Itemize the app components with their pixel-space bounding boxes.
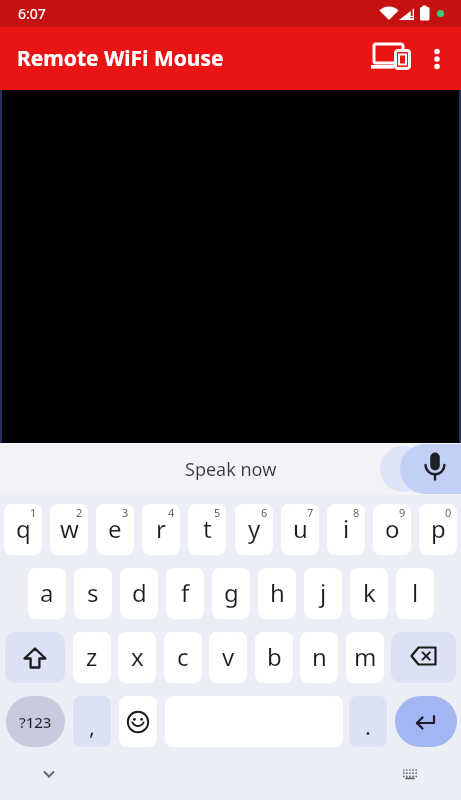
button[interactable]: p (419, 504, 457, 555)
button[interactable]: r (142, 504, 180, 555)
staticText: j (320, 576, 327, 609)
staticText: y (248, 512, 261, 545)
button[interactable]: i (327, 504, 365, 555)
staticText: 6 (261, 505, 268, 520)
staticText: t (203, 512, 212, 545)
staticText: e (108, 512, 122, 545)
staticText: v (222, 640, 235, 673)
staticText: x (131, 640, 144, 673)
staticText: Speak now (185, 457, 277, 482)
button[interactable] (0, 90, 461, 443)
button[interactable]: o (373, 504, 411, 555)
staticText: 5 (214, 505, 221, 520)
staticText: ?123 (19, 712, 52, 732)
staticText: 3 (122, 505, 129, 520)
staticText: n (312, 640, 327, 673)
button[interactable]: k (350, 568, 388, 619)
button[interactable] (391, 632, 456, 683)
staticText: 4 (168, 505, 175, 520)
button[interactable]: u (281, 504, 319, 555)
button[interactable]: f (166, 568, 204, 619)
staticText: 9 (399, 505, 406, 520)
staticText: i (343, 512, 350, 545)
staticText: u (293, 512, 308, 545)
staticText: o (385, 512, 400, 545)
staticText: 2 (76, 505, 83, 520)
staticText: , (89, 711, 95, 741)
button[interactable] (119, 696, 157, 747)
button[interactable]: w (50, 504, 88, 555)
staticText: a (40, 576, 54, 609)
staticText: 8 (353, 505, 360, 520)
staticText: p (431, 512, 446, 545)
button[interactable]: l (396, 568, 434, 619)
button[interactable]: s (74, 568, 112, 619)
staticText: c (177, 640, 189, 673)
button[interactable] (417, 39, 457, 79)
button[interactable]: y (235, 504, 273, 555)
button[interactable]: d (120, 568, 158, 619)
staticText: w (60, 512, 79, 545)
button[interactable]: a (28, 568, 66, 619)
button[interactable]: c (164, 632, 202, 683)
button[interactable] (395, 696, 457, 747)
button[interactable]: g (212, 568, 250, 619)
staticText: 7 (307, 505, 314, 520)
button[interactable]: z (73, 632, 111, 683)
button[interactable]: ?123 (6, 696, 65, 747)
staticText: g (224, 576, 239, 609)
button[interactable]: e (96, 504, 134, 555)
button[interactable]: b (255, 632, 293, 683)
staticText: k (363, 576, 376, 609)
staticText: z (86, 640, 98, 673)
button[interactable]: n (300, 632, 338, 683)
button[interactable] (367, 34, 417, 84)
staticText: f (181, 576, 190, 609)
button[interactable]: h (258, 568, 296, 619)
staticText: 0 (445, 505, 452, 520)
button[interactable] (34, 759, 64, 789)
button[interactable]: v (209, 632, 247, 683)
button[interactable]: m (346, 632, 384, 683)
button[interactable]: j (304, 568, 342, 619)
staticText: l (412, 576, 419, 609)
staticText: q (16, 512, 31, 545)
staticText: s (87, 576, 99, 609)
staticText: Remote WiFi Mouse (17, 44, 224, 73)
button[interactable] (5, 632, 65, 683)
staticText: 1 (30, 505, 37, 520)
button[interactable] (395, 759, 425, 789)
button[interactable]: q (4, 504, 42, 555)
button[interactable]: , (73, 696, 111, 747)
staticText: m (354, 640, 377, 673)
staticText: r (156, 512, 166, 545)
button[interactable]: x (118, 632, 156, 683)
button[interactable]: t (188, 504, 226, 555)
staticText: 6:07 (18, 4, 46, 23)
staticText: d (132, 576, 147, 609)
button[interactable]: . (349, 696, 387, 747)
button[interactable] (371, 443, 461, 495)
staticText: b (267, 640, 282, 673)
staticText: . (365, 711, 371, 741)
staticText: h (270, 576, 285, 609)
